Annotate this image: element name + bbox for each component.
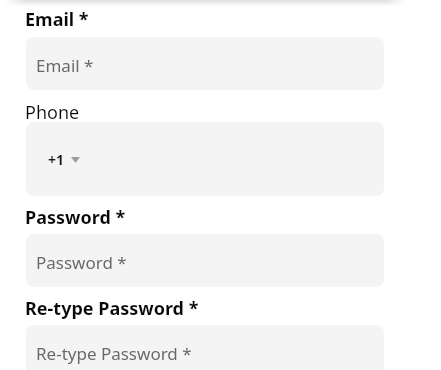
button[interactable]: Password * [26, 234, 384, 287]
staticText: Password * [36, 251, 127, 274]
button[interactable]: Select country calling code, +1 [26, 122, 384, 196]
button[interactable]: Select country calling code, +1 [48, 150, 80, 169]
staticText: Email * [36, 54, 94, 77]
staticText: Password * [25, 205, 126, 230]
button[interactable]: Re-type Password * [26, 325, 384, 370]
staticText: Email * [25, 7, 89, 32]
staticText: +1 [48, 150, 65, 169]
button[interactable]: Email * [26, 37, 384, 90]
staticText: Re-type Password * [25, 296, 199, 321]
staticText: Phone [25, 100, 80, 125]
staticText: Re-type Password * [36, 342, 192, 365]
